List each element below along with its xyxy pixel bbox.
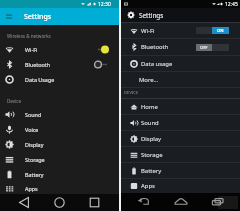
button[interactable]: Menu	[4, 12, 14, 22]
button[interactable]: Bluetooth	[121, 39, 240, 55]
button[interactable]: Apps	[121, 179, 240, 193]
button[interactable]: Battery	[0, 167, 119, 182]
staticText: More...	[139, 76, 159, 84]
button[interactable]: Display	[0, 137, 119, 152]
button[interactable]: Storage	[0, 152, 119, 167]
button[interactable]: Wi-Fi	[0, 42, 119, 57]
button[interactable]: Wi-Fi	[121, 23, 240, 38]
staticText: Sound	[141, 119, 159, 127]
button[interactable]: Sound	[121, 115, 240, 130]
button[interactable]: Battery	[121, 163, 240, 178]
button[interactable]: Off	[196, 44, 229, 51]
staticText: Display	[141, 135, 162, 143]
staticText: 12:45	[225, 1, 238, 8]
staticText: Apps	[25, 185, 38, 192]
staticText: Settings	[24, 12, 52, 22]
button[interactable]: Recent apps	[88, 196, 101, 209]
staticText: Wi-Fi	[25, 46, 38, 53]
staticText: Settings	[139, 11, 164, 20]
button[interactable]: Display	[121, 131, 240, 146]
button[interactable]: Sound	[0, 107, 119, 122]
staticText: Voice	[25, 126, 39, 133]
button[interactable]: Back	[136, 195, 150, 209]
staticText: Device	[7, 98, 22, 104]
button[interactable]: More...	[121, 72, 240, 87]
button[interactable]: Voice	[0, 122, 119, 137]
staticText: Wireless & networks	[7, 33, 51, 39]
button[interactable]: Home	[121, 99, 240, 114]
staticText: Battery	[25, 171, 44, 178]
button[interactable]: Apps	[0, 182, 119, 194]
staticText: Apps	[141, 182, 155, 190]
button[interactable]: Home	[53, 196, 66, 209]
staticText: DEVICE	[124, 90, 139, 96]
button[interactable]: Data usage	[121, 56, 240, 71]
button[interactable]: Storage	[121, 147, 240, 162]
staticText: Data usage	[141, 60, 173, 68]
staticText: Storage	[25, 156, 45, 163]
staticText: ON	[217, 28, 224, 33]
button[interactable]: On	[196, 27, 229, 34]
staticText: 12:30	[98, 1, 111, 8]
staticText: Storage	[141, 151, 163, 159]
button[interactable]: Data Usage	[0, 72, 119, 87]
button[interactable]: Back	[18, 196, 31, 209]
staticText: Bluetooth	[25, 61, 51, 68]
staticText: Data Usage	[25, 76, 55, 83]
staticText: Home	[141, 103, 158, 111]
staticText: Display	[25, 141, 44, 148]
staticText: Wi-Fi	[141, 27, 155, 35]
staticText: Sound	[25, 111, 42, 118]
staticText: OFF	[200, 45, 208, 50]
staticText: Battery	[141, 167, 162, 175]
button[interactable]: Recent apps	[211, 195, 225, 209]
button[interactable]: Home	[174, 195, 188, 209]
staticText: Bluetooth	[141, 43, 169, 51]
button[interactable]: Bluetooth	[0, 57, 119, 72]
